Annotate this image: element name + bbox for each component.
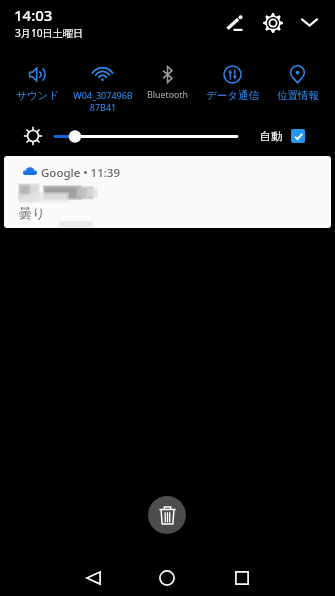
staticText: W04_307496B 87B41 bbox=[73, 89, 133, 114]
button[interactable]: 位置情報 bbox=[265, 58, 330, 102]
button[interactable]: W04_307496B 87B41 bbox=[70, 58, 135, 114]
button[interactable]: Settings bbox=[258, 8, 287, 37]
button[interactable]: Expand quick settings bbox=[295, 8, 324, 37]
button[interactable]: Home bbox=[142, 560, 192, 596]
button[interactable]: Recent apps bbox=[217, 560, 267, 596]
staticText: 3月10日土曜日 bbox=[15, 26, 84, 40]
staticText: データ通信 bbox=[206, 89, 259, 102]
button[interactable]: Back bbox=[68, 560, 118, 596]
staticText: 自動 bbox=[260, 129, 282, 143]
button[interactable]: データ通信 bbox=[200, 58, 265, 102]
staticText: サウンド bbox=[16, 89, 59, 102]
staticText: Google • 11:39 bbox=[41, 165, 120, 181]
button[interactable]: 自動 bbox=[260, 124, 305, 148]
button[interactable]: Edit bbox=[220, 8, 249, 37]
button[interactable]: サウンド bbox=[5, 58, 70, 102]
staticText: 14:03 bbox=[14, 5, 53, 25]
staticText: 曇り bbox=[19, 205, 46, 221]
button[interactable]: Clear all notifications bbox=[148, 496, 186, 534]
staticText: 位置情報 bbox=[277, 89, 319, 102]
button[interactable]: Bluetooth bbox=[135, 58, 200, 101]
staticText: Bluetooth bbox=[147, 89, 188, 101]
button[interactable]: Google • 11:39 bbox=[4, 156, 331, 228]
